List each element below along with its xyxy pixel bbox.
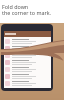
button[interactable] xyxy=(5,45,50,52)
button[interactable] xyxy=(5,73,50,80)
button[interactable] xyxy=(5,66,50,73)
staticText: Fold down the corner to mark. xyxy=(2,3,52,17)
button[interactable] xyxy=(5,52,50,59)
button[interactable] xyxy=(5,59,50,66)
button[interactable] xyxy=(5,38,50,45)
button[interactable] xyxy=(5,80,50,87)
